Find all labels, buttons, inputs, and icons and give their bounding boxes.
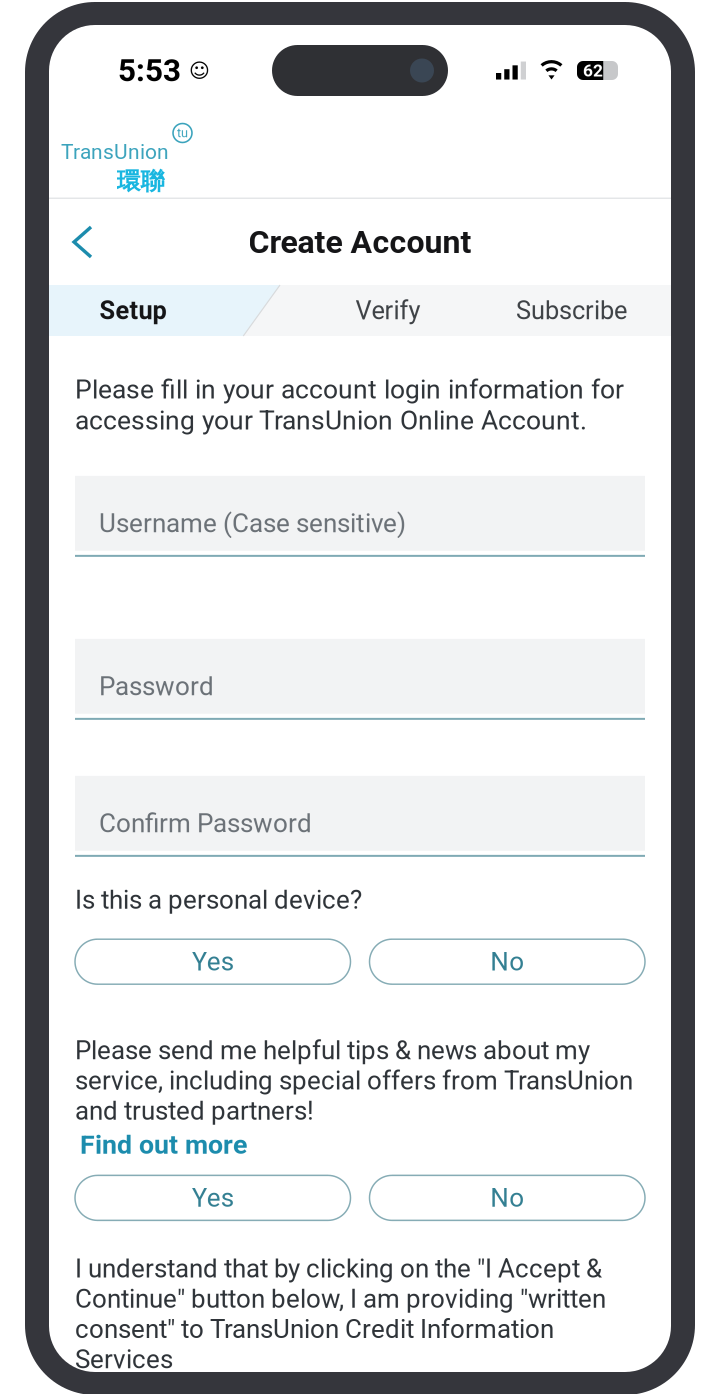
staticText: Password (99, 671, 214, 702)
staticText: Yes (192, 1183, 234, 1213)
staticText: Please send me helpful tips & news about… (75, 1035, 633, 1126)
button[interactable]: Verify (280, 285, 476, 336)
button[interactable]: No (369, 939, 645, 984)
staticText: 62 (583, 60, 603, 81)
button[interactable]: Subscribe (476, 285, 671, 336)
staticText: Subscribe (516, 296, 627, 325)
button[interactable]: Password (75, 639, 645, 720)
staticText: Verify (355, 296, 420, 325)
staticText: Confirm Password (99, 808, 312, 839)
staticText: tu (177, 126, 188, 140)
button[interactable]: Find out more (75, 1126, 645, 1160)
staticText: ☺ (189, 59, 210, 82)
staticText: I understand that by clicking on the "I … (75, 1253, 606, 1375)
staticText: Username (Case sensitive) (99, 508, 406, 539)
staticText: Please fill in your account login inform… (75, 374, 624, 436)
staticText: No (490, 1183, 524, 1213)
button[interactable]: No (369, 1175, 645, 1220)
staticText: Create Account (248, 223, 471, 261)
button[interactable]: Confirm Password (75, 776, 645, 857)
staticText: No (490, 946, 524, 977)
staticText: Is this a personal device? (75, 885, 362, 915)
staticText: 環聯 (116, 166, 164, 196)
staticText: 5:53 (118, 52, 181, 89)
staticText: Setup (99, 296, 166, 325)
staticText: Find out more (80, 1129, 247, 1160)
button[interactable]: Username (Case sensitive) (75, 476, 645, 557)
staticText: TransUnion (61, 139, 169, 164)
button[interactable]: Yes (75, 1175, 350, 1220)
button[interactable]: Setup (49, 285, 280, 336)
button[interactable]: Yes (75, 939, 350, 984)
button[interactable]: Back (49, 199, 123, 285)
staticText: Yes (192, 946, 234, 977)
